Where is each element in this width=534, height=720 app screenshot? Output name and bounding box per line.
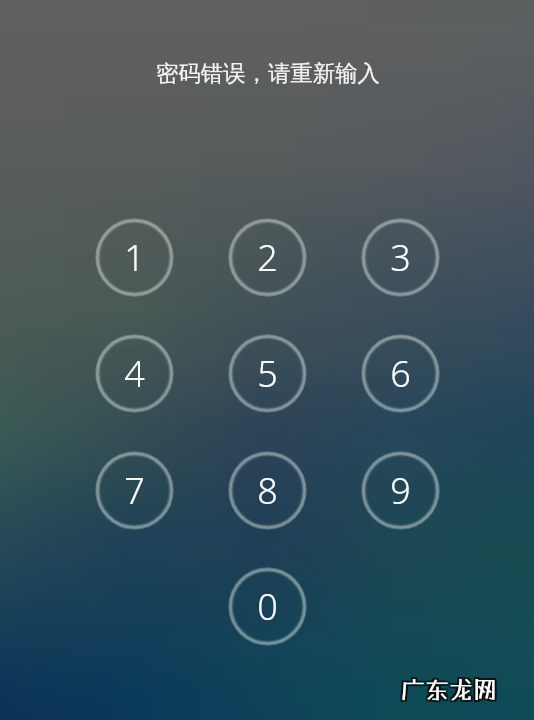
- button[interactable]: 3: [361, 218, 440, 297]
- staticText: 6: [390, 349, 411, 398]
- button[interactable]: 2: [228, 218, 307, 297]
- staticText: 4: [124, 349, 145, 398]
- button[interactable]: 9: [361, 451, 440, 530]
- button[interactable]: 6: [361, 334, 440, 413]
- button[interactable]: 1: [95, 218, 174, 297]
- staticText: 广东龙网: [401, 675, 497, 703]
- staticText: 广东龙网: [399, 673, 495, 701]
- staticText: 广东龙网: [403, 677, 499, 705]
- staticText: 广东龙网: [401, 677, 497, 705]
- staticText: 1: [124, 233, 145, 282]
- staticText: 9: [390, 466, 411, 515]
- staticText: 8: [257, 466, 278, 515]
- button[interactable]: 8: [228, 451, 307, 530]
- staticText: 广东龙网: [403, 675, 499, 703]
- staticText: 密码错误，请重新输入: [156, 59, 380, 87]
- staticText: 广东龙网: [399, 675, 495, 703]
- staticText: 广东龙网: [403, 673, 499, 701]
- button[interactable]: 5: [228, 334, 307, 413]
- button[interactable]: 4: [95, 334, 174, 413]
- staticText: 3: [390, 233, 411, 282]
- staticText: 广东龙网: [401, 673, 497, 701]
- staticText: 7: [124, 466, 145, 515]
- button[interactable]: 0: [228, 567, 307, 646]
- staticText: 5: [257, 349, 278, 398]
- button[interactable]: 7: [95, 451, 174, 530]
- staticText: 2: [257, 233, 278, 282]
- staticText: 0: [257, 582, 278, 631]
- staticText: 广东龙网: [399, 677, 495, 705]
